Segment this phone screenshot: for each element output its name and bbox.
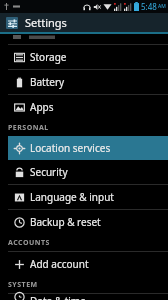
staticText: Backup & reset bbox=[30, 215, 101, 229]
staticText: Settings bbox=[25, 15, 67, 30]
button[interactable]: Location services bbox=[8, 136, 168, 160]
staticText: Date & time bbox=[30, 294, 86, 300]
staticText: Add account bbox=[30, 257, 89, 271]
staticText: Apps bbox=[30, 100, 54, 114]
staticText: Storage bbox=[30, 50, 67, 64]
button[interactable]: Date & time bbox=[8, 294, 168, 300]
staticText: ACCOUNTS bbox=[8, 238, 50, 248]
button[interactable]: Security bbox=[8, 160, 168, 184]
button[interactable]: Add account bbox=[8, 252, 168, 276]
staticText: Battery bbox=[30, 75, 65, 89]
button[interactable]: Storage bbox=[8, 45, 168, 69]
button[interactable]: Apps bbox=[8, 95, 168, 119]
staticText: Security bbox=[30, 165, 68, 179]
staticText: SYSTEM bbox=[8, 280, 38, 290]
staticText: 5:48 bbox=[141, 1, 157, 12]
button[interactable] bbox=[8, 34, 168, 44]
button[interactable]: Backup & reset bbox=[8, 210, 168, 234]
button[interactable]: Battery bbox=[8, 70, 168, 94]
staticText: PERSONAL bbox=[8, 123, 49, 133]
staticText: Location services bbox=[30, 141, 111, 155]
button[interactable]: Language & input bbox=[8, 185, 168, 209]
staticText: AM bbox=[158, 3, 166, 10]
staticText: Language & input bbox=[30, 190, 114, 204]
